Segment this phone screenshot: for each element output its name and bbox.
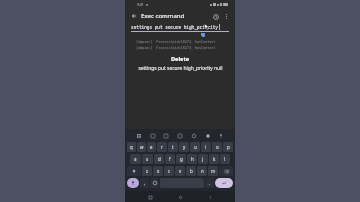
staticText: [abproc] Process(pid=18274, hasContext	[136, 39, 216, 44]
staticText: Exec command	[141, 12, 185, 20]
staticText: settings put secure high_priority	[131, 24, 218, 30]
staticText: n	[201, 168, 204, 174]
button[interactable]: u	[190, 142, 200, 152]
staticText: k	[213, 156, 216, 162]
staticText: y	[183, 144, 186, 150]
staticText: g	[180, 156, 183, 162]
button[interactable]: Home	[175, 192, 185, 202]
staticText: e	[150, 144, 153, 150]
staticText: z	[146, 168, 149, 174]
staticText: v	[179, 168, 182, 174]
staticText: t	[172, 144, 174, 150]
button[interactable]: v	[175, 166, 185, 176]
staticText: m	[211, 168, 216, 174]
staticText: x	[157, 168, 160, 174]
button[interactable]: More options	[221, 11, 232, 22]
button[interactable]: r	[157, 142, 167, 152]
button[interactable]: Emoji	[190, 132, 198, 140]
button[interactable]: o	[212, 142, 222, 152]
button[interactable]: l	[220, 154, 230, 164]
staticText: p	[227, 144, 230, 150]
button[interactable]: q	[127, 142, 136, 152]
button[interactable]: w	[137, 142, 146, 152]
button[interactable]: d	[154, 154, 164, 164]
button[interactable]: Emoji	[150, 178, 159, 188]
button[interactable]: g	[176, 154, 186, 164]
button[interactable]: Voice input	[217, 132, 225, 140]
button[interactable]: j	[198, 154, 208, 164]
staticText: s	[146, 156, 149, 162]
button[interactable]: f	[165, 154, 175, 164]
button[interactable]: i	[201, 142, 211, 152]
button[interactable]: History	[210, 11, 221, 22]
button[interactable]: .	[205, 178, 214, 188]
button[interactable]: p	[223, 142, 233, 152]
staticText: c	[168, 168, 171, 174]
staticText: h	[191, 156, 194, 162]
button[interactable]: Back	[128, 10, 140, 22]
staticText: d	[158, 156, 161, 162]
staticText: o	[216, 144, 219, 150]
button[interactable]: a	[130, 154, 141, 164]
button[interactable]: Sticker	[176, 132, 184, 140]
button[interactable]: t	[168, 142, 178, 152]
staticText: settings put secure high_priority null	[138, 65, 223, 72]
button[interactable]: e	[147, 142, 156, 152]
button[interactable]: x	[153, 166, 163, 176]
staticText: w	[140, 144, 144, 150]
staticText: q	[130, 144, 133, 150]
staticText: i	[205, 144, 207, 150]
button[interactable]: Backspace	[219, 166, 233, 176]
button[interactable]: m	[208, 166, 218, 176]
button[interactable]: GIF	[162, 132, 170, 140]
button[interactable]: y	[179, 142, 189, 152]
staticText: ,	[144, 180, 146, 186]
staticText: 9:41	[137, 2, 144, 7]
staticText: Delete	[171, 55, 190, 63]
button[interactable]: Back	[205, 192, 215, 202]
staticText: a	[134, 156, 137, 162]
button[interactable]: b	[186, 166, 196, 176]
button[interactable]: Clipboard	[149, 132, 157, 140]
button[interactable]: Enter	[215, 178, 233, 188]
button[interactable]: k	[209, 154, 219, 164]
staticText: l	[224, 156, 226, 162]
button[interactable]: Recents	[145, 192, 155, 202]
staticText: r	[161, 144, 163, 150]
button[interactable]: n	[197, 166, 207, 176]
staticText: .	[209, 180, 211, 186]
button[interactable]: Theme	[204, 132, 212, 140]
staticText: u	[194, 144, 197, 150]
button[interactable]: Voice input	[127, 178, 139, 188]
button[interactable]: h	[187, 154, 197, 164]
button[interactable]: s	[142, 154, 153, 164]
button[interactable]: Apps	[135, 132, 143, 140]
button[interactable]: ,	[140, 178, 149, 188]
button[interactable]: z	[142, 166, 152, 176]
button[interactable]: c	[164, 166, 174, 176]
staticText: f	[169, 156, 171, 162]
staticText: b	[190, 168, 193, 174]
staticText: [abproc] Process(pid=18274, hasContext	[136, 45, 216, 50]
staticText: j	[202, 156, 204, 162]
button[interactable]: Shift	[127, 166, 141, 176]
